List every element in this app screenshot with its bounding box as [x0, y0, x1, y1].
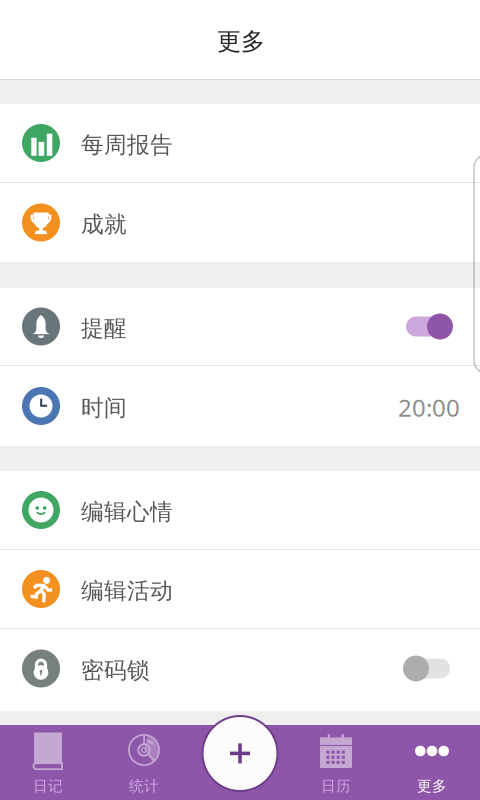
staticText: 每周报告: [81, 131, 173, 159]
staticText: 提醒: [81, 315, 127, 342]
staticText: 日历: [321, 777, 351, 795]
button[interactable]: 编辑心情: [0, 471, 480, 549]
staticText: 20:00: [398, 392, 460, 423]
staticText: 统计: [129, 777, 159, 795]
button[interactable]: 密码锁: [0, 629, 480, 708]
button[interactable]: 统计: [96, 725, 192, 800]
staticText: 日记: [33, 777, 63, 795]
staticText: 更多: [417, 777, 447, 795]
button[interactable]: 编辑活动: [0, 550, 480, 628]
button[interactable]: 成就: [0, 183, 480, 262]
staticText: 编辑活动: [81, 577, 173, 605]
button[interactable]: 更多: [384, 725, 480, 800]
button[interactable]: 日记: [0, 725, 96, 800]
staticText: 时间: [81, 394, 127, 422]
button[interactable]: 每周报告: [0, 104, 480, 182]
staticText: 更多: [217, 27, 265, 56]
staticText: 密码锁: [81, 657, 150, 684]
button[interactable]: 提醒: [0, 288, 480, 365]
staticText: 成就: [81, 211, 127, 238]
button[interactable]: 时间: [0, 366, 480, 446]
button[interactable]: Add entry: [201, 715, 278, 792]
staticText: 编辑心情: [81, 498, 173, 526]
button[interactable]: 日历: [288, 725, 384, 800]
